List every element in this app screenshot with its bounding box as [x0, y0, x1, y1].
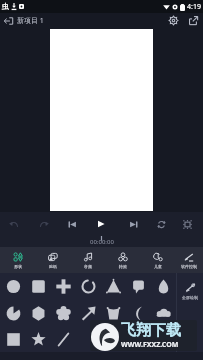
button[interactable]: Fullscreen [177, 212, 197, 236]
button[interactable]: Next [123, 212, 143, 236]
button[interactable]: Shape 15 [1, 327, 25, 351]
staticText: 00:00:00 [90, 238, 114, 246]
staticText: 形状 [14, 264, 22, 269]
button[interactable]: Play [91, 212, 111, 236]
button[interactable]: Shape 2 [26, 274, 50, 298]
button[interactable]: Shape 16 [26, 327, 50, 351]
button[interactable]: Shape 6 [126, 274, 150, 298]
button[interactable]: Shape 9 [26, 301, 50, 325]
button[interactable]: Shape 5 [101, 274, 125, 298]
button[interactable]: 特效 [105, 247, 140, 273]
button[interactable]: Undo [3, 212, 23, 236]
staticText: 虫 [2, 2, 9, 11]
staticText: WWW.FXXZ.COM [121, 340, 179, 350]
button[interactable]: Settings [163, 13, 183, 28]
button[interactable]: Shape 13 [126, 301, 150, 325]
button[interactable]: 儿童 [140, 247, 175, 273]
button[interactable]: Loop [151, 212, 171, 236]
staticText: 飞翔下载 [121, 321, 181, 340]
button[interactable]: 软件控制 [175, 247, 203, 273]
staticText: 特效 [119, 264, 127, 269]
button[interactable]: Shape 12 [101, 301, 125, 325]
button[interactable]: Shape 11 [76, 301, 100, 325]
staticText: 软件控制 [181, 264, 197, 269]
button[interactable]: 贴纸 [35, 247, 70, 273]
button[interactable]: Shape 8 [1, 301, 25, 325]
button[interactable]: Back [0, 13, 17, 28]
button[interactable]: Redo [34, 212, 54, 236]
button[interactable]: 音频 [70, 247, 105, 273]
button[interactable]: Previous [62, 212, 82, 236]
staticText: 音频 [84, 264, 92, 269]
button[interactable]: 全屏绘制 [177, 273, 203, 352]
staticText: 4:19 [187, 2, 201, 12]
staticText: 贴纸 [49, 264, 57, 269]
button[interactable]: Shape 7 [151, 274, 175, 298]
button[interactable]: Shape 17 [51, 327, 75, 351]
button[interactable]: Shape 14 [151, 301, 175, 325]
staticText: 新项目 1 [17, 16, 44, 26]
button[interactable]: Shape 10 [51, 301, 75, 325]
button[interactable]: Export [183, 13, 203, 28]
button[interactable]: Shape 4 [76, 274, 100, 298]
staticText: 儿童 [154, 264, 162, 269]
staticText: 全屏绘制 [182, 295, 198, 300]
button[interactable]: Shape 3 [51, 274, 75, 298]
button[interactable]: Shape 1 [1, 274, 25, 298]
button[interactable]: 形状 [0, 247, 35, 273]
